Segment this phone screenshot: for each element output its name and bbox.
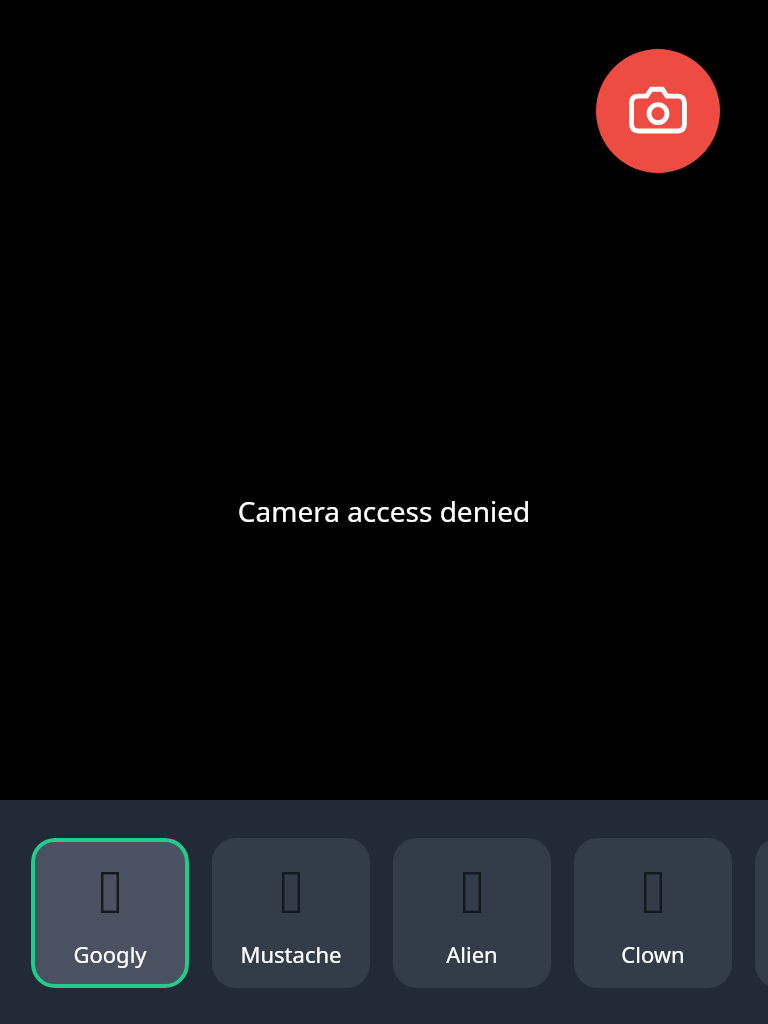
button[interactable]: Take photo bbox=[596, 49, 720, 173]
button[interactable]: Dog bbox=[755, 838, 768, 988]
staticText: Clown bbox=[574, 939, 732, 969]
button[interactable]: Googly bbox=[31, 838, 189, 988]
staticText: Alien bbox=[393, 939, 551, 969]
staticText: Mustache bbox=[212, 939, 370, 969]
button[interactable]: Alien bbox=[393, 838, 551, 988]
button[interactable]: Mustache bbox=[212, 838, 370, 988]
staticText: Camera access denied bbox=[0, 492, 768, 530]
staticText: Googly bbox=[31, 939, 189, 969]
button[interactable]: Clown bbox=[574, 838, 732, 988]
